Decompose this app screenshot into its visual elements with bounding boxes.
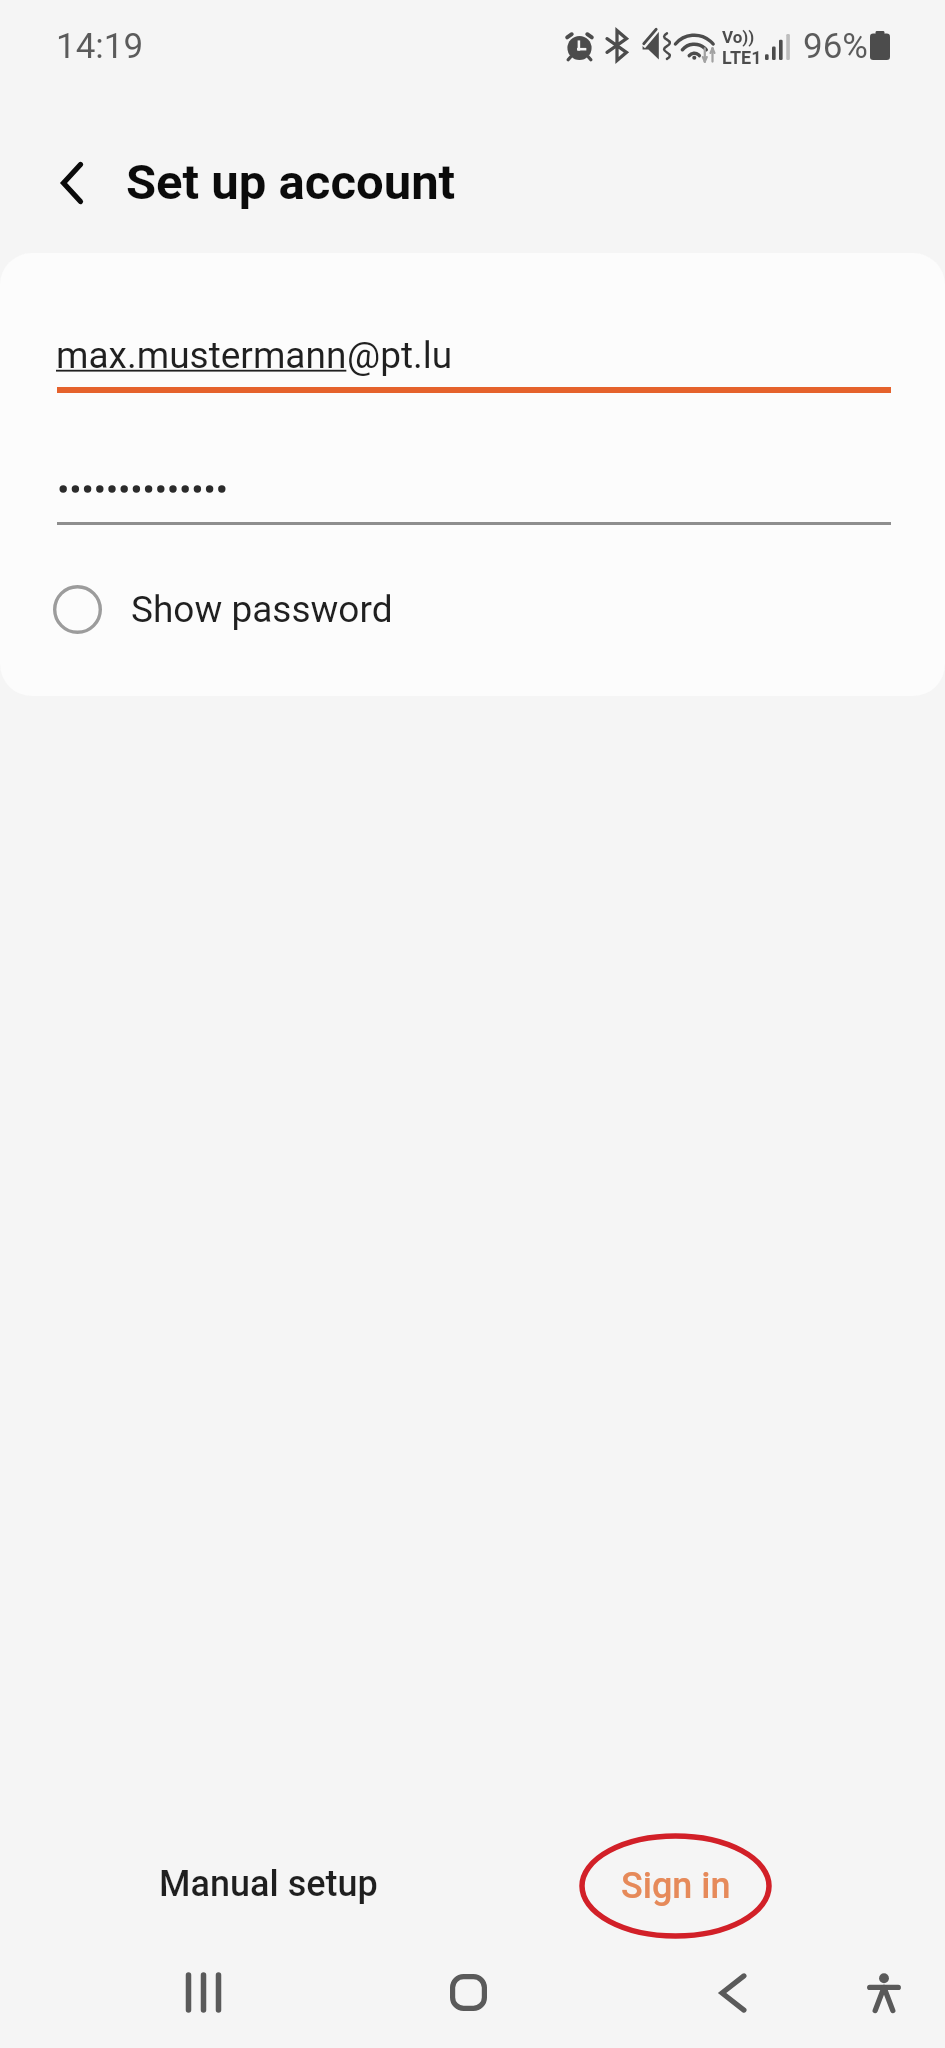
staticText: @pt.lu: [347, 334, 453, 377]
button[interactable]: Back: [687, 1953, 779, 2045]
button[interactable]: Navigate up: [21, 110, 123, 212]
button[interactable]: Recent apps: [158, 1953, 250, 2045]
staticText: max.mustermann: [56, 334, 347, 377]
button[interactable]: Sign in: [582, 1836, 769, 1936]
staticText: 14:19: [56, 26, 144, 67]
staticText: Show password: [131, 588, 393, 631]
staticText: Sign in: [621, 1865, 731, 1907]
staticText: LTE1: [722, 47, 762, 68]
button[interactable]: max.mustermann: [57, 309, 891, 393]
button[interactable]: Manual setup: [112, 1828, 424, 1940]
staticText: Manual setup: [159, 1863, 378, 1905]
staticText: 96%: [803, 26, 868, 67]
button[interactable]: Show password: [0, 569, 945, 649]
staticText: Vo)): [722, 27, 755, 47]
button[interactable]: Home: [422, 1953, 514, 2045]
button[interactable]: Accessibility: [838, 1953, 930, 2045]
button[interactable]: [57, 453, 891, 525]
staticText: Set up account: [126, 154, 456, 211]
